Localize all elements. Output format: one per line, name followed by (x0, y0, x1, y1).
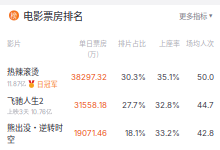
staticText: 44.7 (197, 100, 214, 110)
staticText: 场均人次 (186, 38, 214, 48)
staticText: 飞驰人生2 (7, 94, 43, 106)
button[interactable]: 熊出没·逆转时空 (0, 119, 220, 147)
staticText: 上座率 (159, 38, 180, 48)
staticText: 19071.46 (74, 128, 107, 138)
button[interactable]: 飞驰人生2 (0, 91, 220, 119)
staticText: 单日票房 (79, 38, 107, 48)
staticText: 27.7% (122, 100, 146, 110)
staticText: 33.2% (155, 128, 180, 138)
staticText: 35.1% (157, 72, 180, 82)
staticText: 熊出没·逆转时空 (7, 121, 63, 145)
staticText: 31558.18 (74, 100, 107, 110)
staticText: 上映3天 10.76亿 (7, 108, 52, 116)
staticText: ▾ (209, 12, 212, 19)
staticText: 电影票房排名 (23, 8, 83, 23)
staticText: 50.0 (197, 72, 214, 82)
staticText: 42.8 (197, 128, 214, 138)
staticText: 18.1% (125, 128, 146, 138)
staticText: 32.8% (155, 100, 180, 110)
button[interactable]: 更多指标 (179, 10, 212, 21)
button[interactable]: 热辣滚烫 (0, 63, 220, 91)
staticText: 榜 (10, 11, 17, 20)
staticText: 热辣滚烫 (7, 65, 39, 77)
staticText: 更多指标 (179, 10, 207, 21)
staticText: 排片占比 (118, 38, 146, 48)
staticText: 影片 (7, 38, 21, 48)
staticText: 11.87亿 (7, 80, 26, 88)
button[interactable]: 榜 (9, 8, 83, 23)
staticText: 38297.32 (71, 72, 107, 82)
staticText: (万) (87, 49, 98, 59)
staticText: 30.3% (121, 72, 146, 82)
staticText: 日冠军 (37, 79, 58, 89)
